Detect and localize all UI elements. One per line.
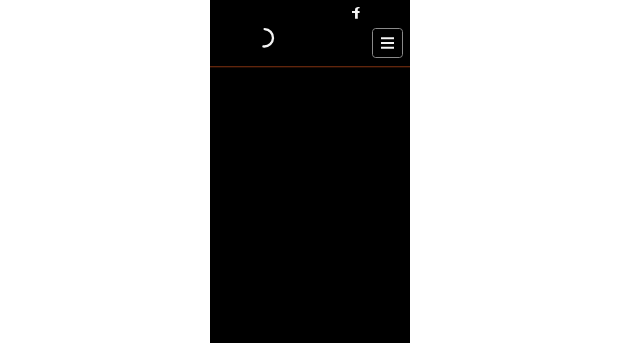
button[interactable]: Facebook [346, 3, 366, 23]
button[interactable]: Menu [372, 28, 403, 58]
